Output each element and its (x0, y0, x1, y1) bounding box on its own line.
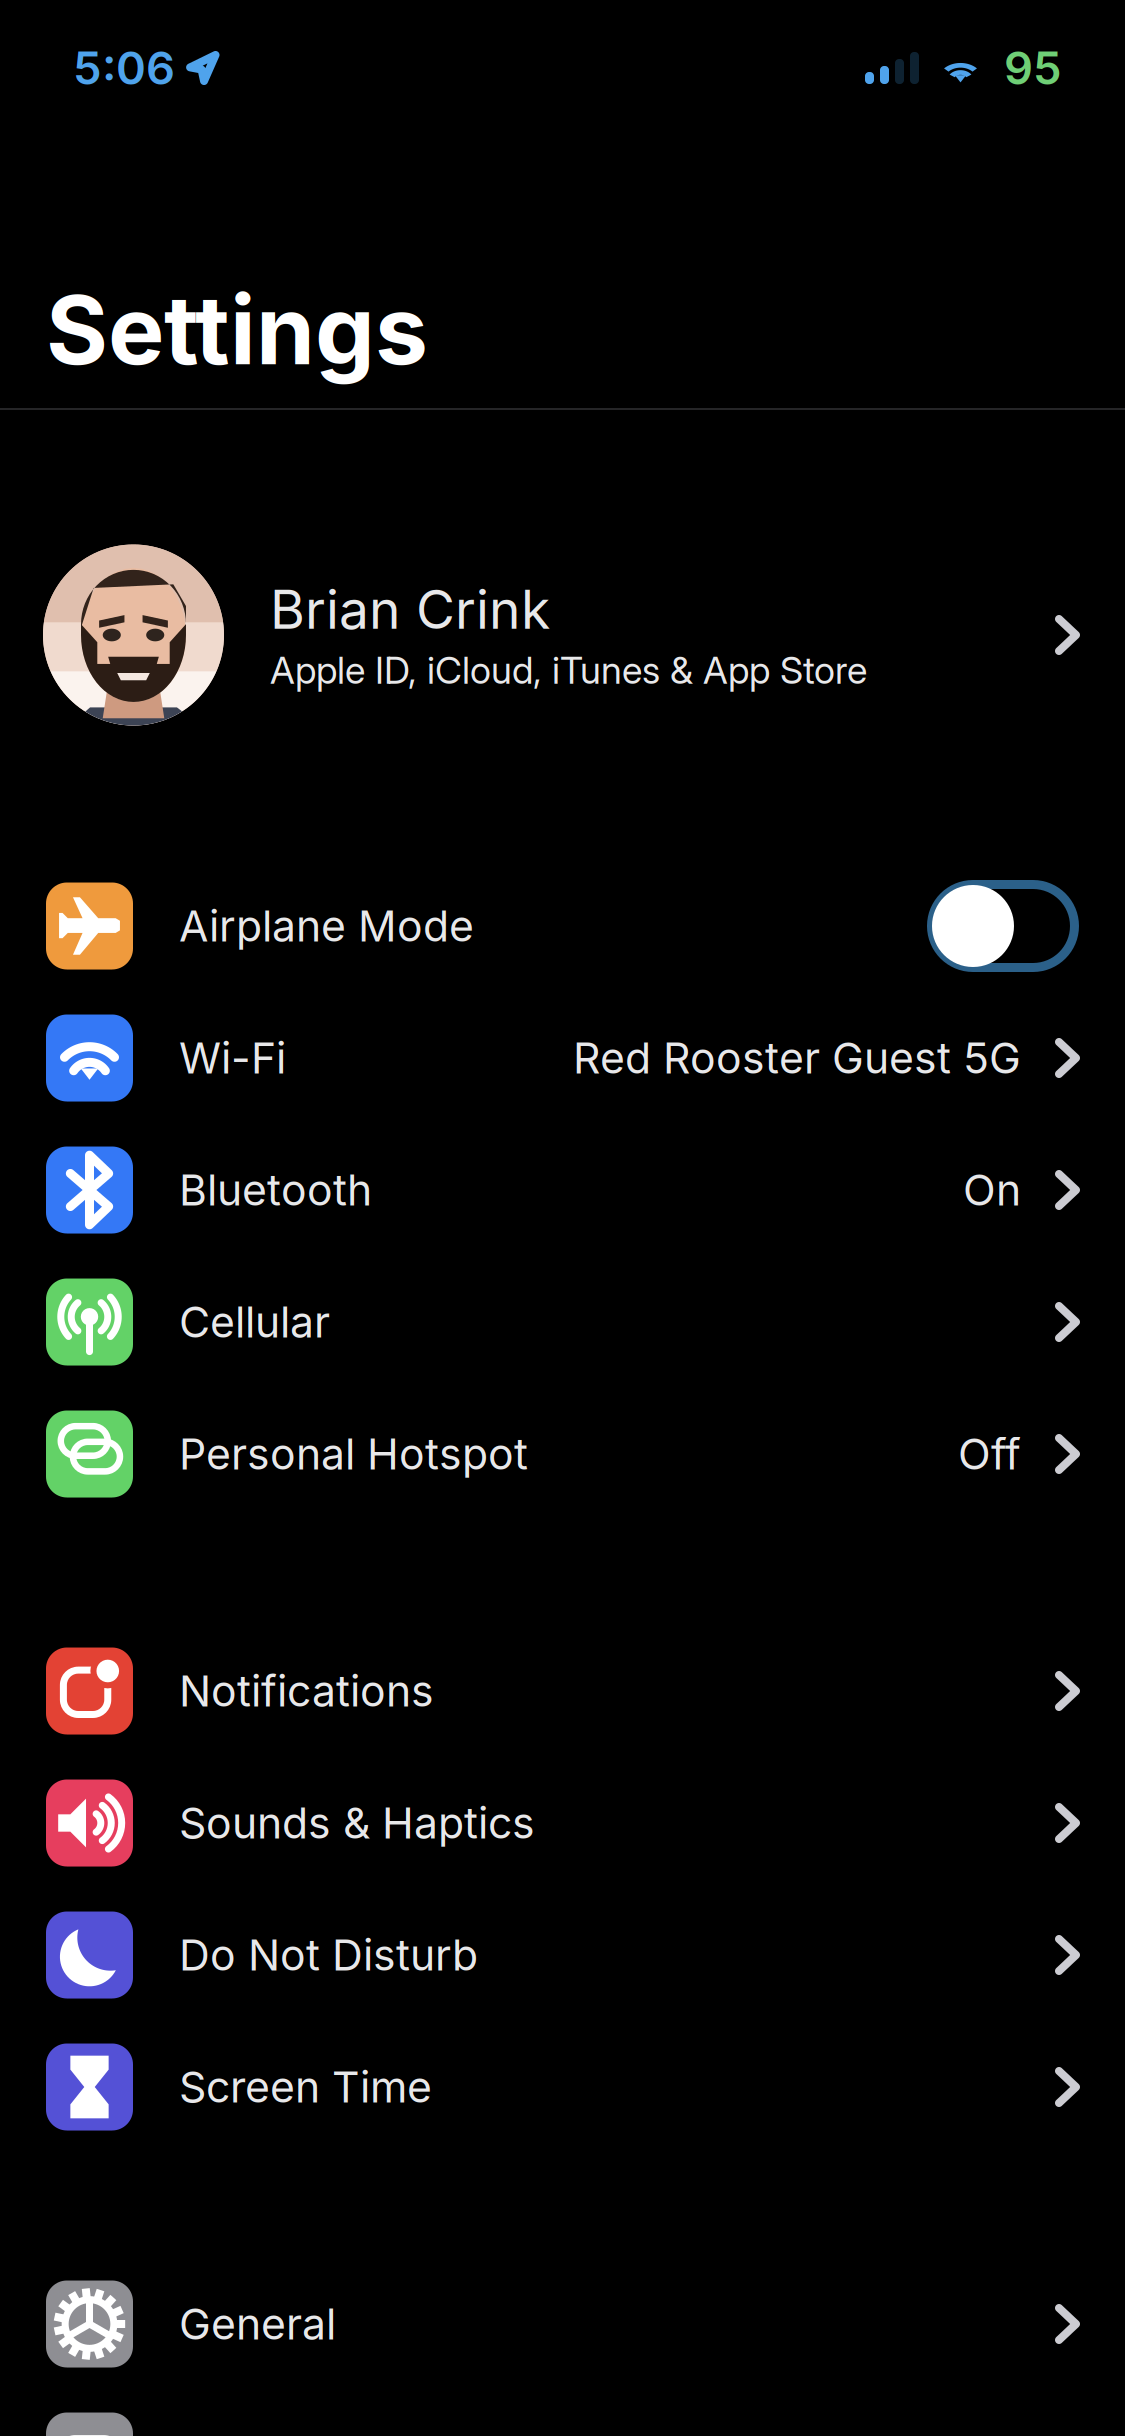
button[interactable]: Airplane Mode (0, 860, 1125, 992)
staticText: General (179, 2298, 336, 2350)
staticText: 5:06 (73, 41, 175, 95)
staticText: Sounds & Haptics (179, 1797, 535, 1849)
button[interactable]: Bluetooth (0, 1124, 1125, 1256)
staticText: Notifications (179, 1665, 434, 1717)
staticText: Wi-Fi (179, 1032, 286, 1084)
button[interactable]: Cellular (0, 1256, 1125, 1388)
staticText: Red Rooster Guest 5G (573, 1032, 1021, 1084)
staticText: Bluetooth (179, 1164, 372, 1216)
staticText: Off (958, 1428, 1021, 1480)
staticText: Personal Hotspot (179, 1428, 528, 1480)
staticText: Screen Time (179, 2061, 432, 2113)
button[interactable]: Personal Hotspot (0, 1388, 1125, 1520)
button[interactable]: Wi-Fi (0, 992, 1125, 1124)
button[interactable]: Sounds & Haptics (0, 1757, 1125, 1889)
button[interactable]: Do Not Disturb (0, 1889, 1125, 2021)
staticText: Brian Crink (270, 577, 550, 642)
button[interactable]: Brian Crink (0, 410, 1125, 860)
staticText: Apple ID, iCloud, iTunes & App Store (270, 648, 867, 693)
staticText: Cellular (179, 1296, 330, 1348)
staticText: Airplane Mode (179, 900, 474, 952)
button[interactable]: Notifications (0, 1625, 1125, 1757)
button[interactable]: General (0, 2258, 1125, 2390)
button[interactable]: Control Center (0, 2390, 1125, 2436)
button[interactable]: Screen Time (0, 2021, 1125, 2153)
staticText: On (963, 1164, 1021, 1216)
staticText: 95 (1004, 41, 1062, 95)
staticText: Settings (46, 272, 428, 387)
staticText: Do Not Disturb (179, 1929, 478, 1981)
